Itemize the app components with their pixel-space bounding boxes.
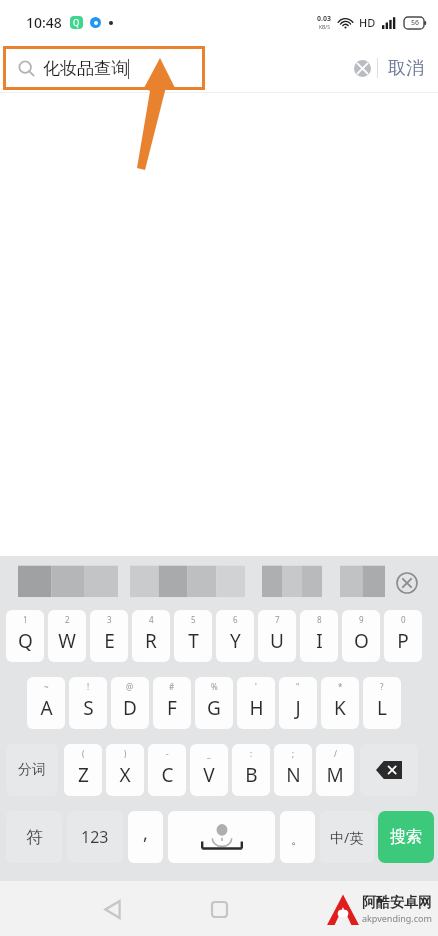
staticText: G (207, 695, 221, 721)
staticText: 取消 (388, 57, 424, 80)
staticText: KB/S (319, 24, 330, 31)
button[interactable]: / (316, 744, 354, 796)
staticText: 分词 (18, 761, 46, 779)
button[interactable]: 7 (258, 610, 296, 662)
staticText: 5 (191, 614, 196, 625)
staticText: 0 (401, 614, 406, 625)
staticText: 4 (149, 614, 154, 625)
staticText: Q (73, 17, 80, 28)
button[interactable]: ~ (27, 677, 65, 729)
staticText: 3 (107, 614, 112, 625)
staticText: , (143, 821, 148, 846)
staticText: H (249, 695, 264, 721)
staticText: Q (18, 628, 33, 654)
staticText: ! (87, 681, 90, 692)
button[interactable]: 。 (280, 811, 315, 863)
button[interactable]: 123 (67, 811, 123, 863)
button[interactable]: 2 (48, 610, 86, 662)
button[interactable]: 符 (6, 811, 62, 863)
staticText: W (58, 628, 76, 654)
staticText: K (334, 695, 346, 721)
staticText: akpvending.com (362, 912, 432, 924)
staticText: * (338, 681, 343, 692)
button[interactable]: ' (237, 677, 275, 729)
staticText: 搜索 (390, 827, 422, 847)
button[interactable]: 9 (342, 610, 380, 662)
staticText: / (334, 748, 337, 759)
staticText: T (188, 628, 199, 654)
staticText: E (104, 628, 115, 654)
button[interactable]: 取消 (388, 57, 424, 80)
staticText: 123 (81, 826, 109, 848)
staticText: 化妆品查询 (43, 58, 128, 79)
button[interactable]: 8 (300, 610, 338, 662)
staticText: A (40, 695, 53, 721)
staticText: Y (230, 628, 241, 654)
button[interactable]: 6 (216, 610, 254, 662)
staticText: ; (292, 748, 295, 759)
button[interactable]: , (128, 811, 163, 863)
staticText: C (161, 762, 174, 788)
staticText: M (326, 762, 344, 788)
button[interactable]: 化妆品查询 (3, 46, 205, 90)
button[interactable]: 0 (384, 610, 422, 662)
staticText: X (119, 762, 131, 788)
button[interactable]: 4 (132, 610, 170, 662)
staticText: L (377, 695, 387, 721)
staticText: P (397, 628, 409, 654)
staticText: B (245, 762, 258, 788)
staticText: % (211, 681, 218, 692)
staticText: 0.03 (317, 14, 331, 24)
button[interactable]: ( (64, 744, 102, 796)
staticText: I (316, 628, 323, 654)
button[interactable]: " (279, 677, 317, 729)
button[interactable]: @ (111, 677, 149, 729)
button[interactable]: 5 (174, 610, 212, 662)
staticText: S (83, 695, 94, 721)
staticText: R (145, 628, 157, 654)
staticText: J (295, 695, 301, 721)
staticText: : (250, 748, 253, 759)
button[interactable]: Home (199, 889, 239, 929)
button[interactable]: 中/英 (320, 811, 374, 863)
button[interactable]: * (321, 677, 359, 729)
button[interactable]: # (153, 677, 191, 729)
staticText: 56 (411, 18, 420, 28)
staticText: 中/英 (330, 828, 364, 847)
button[interactable]: - (148, 744, 186, 796)
staticText: 7 (275, 614, 280, 625)
button[interactable]: 3 (90, 610, 128, 662)
button[interactable]: Back (92, 889, 132, 929)
button[interactable]: 分词 (6, 744, 58, 796)
button[interactable]: Backspace (360, 744, 418, 796)
staticText: " (296, 681, 300, 692)
staticText: HD (359, 15, 376, 30)
button[interactable]: ! (69, 677, 107, 729)
staticText: ) (124, 748, 127, 759)
button[interactable]: _ (190, 744, 228, 796)
button[interactable]: Close suggestions (392, 568, 422, 598)
staticText: 9 (359, 614, 364, 625)
button[interactable]: Space (168, 811, 275, 863)
staticText: - (166, 748, 169, 759)
staticText: Z (78, 762, 89, 788)
button[interactable]: 1 (6, 610, 44, 662)
staticText: ~ (44, 681, 49, 692)
staticText: N (286, 762, 301, 788)
button[interactable]: % (195, 677, 233, 729)
button[interactable]: ; (274, 744, 312, 796)
staticText: 。 (291, 831, 304, 847)
staticText: @ (126, 681, 134, 692)
button[interactable]: Clear text (347, 53, 377, 83)
staticText: 2 (65, 614, 70, 625)
button[interactable]: ) (106, 744, 144, 796)
staticText: 1 (23, 614, 28, 625)
staticText: 6 (233, 614, 238, 625)
button[interactable]: 搜索 (378, 811, 434, 863)
button[interactable]: : (232, 744, 270, 796)
staticText: U (270, 628, 284, 654)
staticText: ? (380, 681, 384, 692)
button[interactable]: ? (363, 677, 401, 729)
staticText: _ (207, 748, 211, 759)
staticText: 8 (317, 614, 322, 625)
